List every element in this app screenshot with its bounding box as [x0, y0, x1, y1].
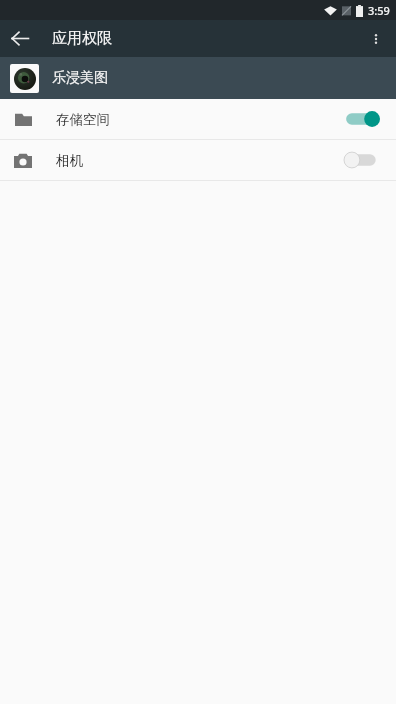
button[interactable]: Off [344, 149, 380, 171]
button[interactable]: 相机 [0, 140, 396, 180]
button[interactable]: 乐浸美图 [0, 57, 396, 99]
staticText: 存储空间 [56, 111, 110, 128]
button[interactable]: More options [356, 20, 396, 57]
button[interactable]: On [344, 108, 380, 130]
button[interactable]: Back [0, 20, 40, 57]
staticText: 3:59 [368, 3, 390, 18]
staticText: 相机 [56, 152, 83, 169]
staticText: 应用权限 [52, 29, 112, 48]
staticText: 乐浸美图 [52, 69, 108, 87]
button[interactable]: 存储空间 [0, 99, 396, 139]
